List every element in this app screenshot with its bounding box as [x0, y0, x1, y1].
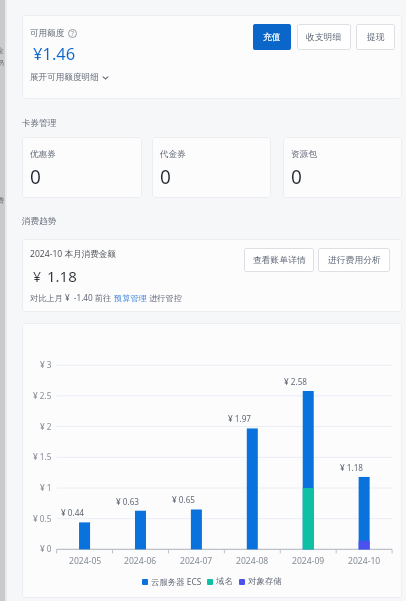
staticText: 进行费用分析 — [328, 255, 381, 266]
button[interactable]: 查看账单详情 — [244, 248, 314, 272]
staticText: 进行管控 — [147, 292, 182, 303]
staticText: 消费趋势 — [22, 216, 57, 227]
staticText: ¥ 1.18 — [340, 462, 364, 473]
button[interactable]: 充值 — [253, 24, 291, 50]
staticText: 易 — [0, 58, 4, 67]
staticText: 展开可用额度明细 — [30, 72, 99, 83]
staticText: ¥ 1.97 — [228, 413, 252, 424]
staticText: 可用额度 — [30, 28, 65, 39]
staticText: 0 — [30, 164, 41, 190]
staticText: 2024-08 — [236, 555, 269, 567]
staticText: 代金券 — [160, 149, 186, 160]
staticText: 2024-10 — [348, 555, 381, 567]
staticText: 0 — [291, 164, 302, 190]
staticText: ¥ 0.65 — [172, 494, 196, 505]
staticText: ¥ 1 — [40, 482, 52, 493]
button[interactable]: 说明 — [68, 29, 77, 38]
staticText: ¥ — [33, 267, 42, 286]
staticText: 2024-10 本月消费金额 — [30, 248, 117, 260]
staticText: 对象存储 — [248, 576, 282, 587]
staticText: 2024-09 — [292, 555, 325, 567]
button[interactable]: 资源包 — [283, 137, 402, 198]
button[interactable]: 提现 — [356, 24, 395, 50]
staticText: 收支明细 — [306, 32, 342, 43]
staticText: ¥ 1.5 — [33, 451, 52, 462]
button[interactable]: 进行费用分析 — [318, 248, 390, 272]
staticText: 2024-07 — [180, 555, 213, 567]
button[interactable]: 收支明细 — [297, 24, 351, 50]
staticText: 优惠券 — [30, 149, 56, 160]
staticText: 对比上月 ¥ -1.40 前往 — [30, 292, 114, 303]
staticText: 费 — [0, 196, 4, 205]
staticText: 查看账单详情 — [253, 255, 306, 266]
staticText: ¥ 2.58 — [284, 376, 308, 387]
staticText: 1.18 — [47, 266, 77, 286]
button[interactable]: 域名 — [207, 576, 233, 587]
staticText: 充值 — [263, 32, 281, 43]
staticText: ¥ 2 — [40, 421, 52, 432]
staticText: 卡券管理 — [22, 118, 57, 129]
staticText: ¥ 0.63 — [116, 496, 140, 507]
button[interactable]: 展开可用额度明细 — [30, 72, 109, 83]
staticText: 域名 — [216, 576, 233, 587]
staticText: 金 — [0, 46, 4, 55]
staticText: 2024-06 — [124, 555, 157, 567]
button[interactable]: 对象存储 — [239, 576, 282, 587]
staticText: ¥1.46 — [33, 42, 76, 64]
staticText: ¥ 0 — [40, 543, 52, 554]
button[interactable]: 代金券 — [152, 137, 271, 198]
button[interactable]: 优惠券 — [22, 137, 142, 198]
staticText: 提现 — [367, 32, 385, 43]
staticText: ? — [71, 29, 74, 38]
staticText: 资源包 — [291, 149, 317, 160]
staticText: 云服务器 ECS — [151, 576, 202, 587]
staticText: 0 — [160, 164, 171, 190]
staticText: ¥ 0.44 — [61, 507, 85, 518]
staticText: ¥ 2.5 — [33, 390, 52, 401]
staticText: ¥ 0.5 — [33, 513, 52, 524]
staticText: ¥ 3 — [40, 359, 52, 370]
button[interactable]: 预算管理 — [114, 293, 147, 303]
staticText: 2024-05 — [69, 555, 102, 567]
button[interactable]: 云服务器 ECS — [142, 576, 202, 587]
